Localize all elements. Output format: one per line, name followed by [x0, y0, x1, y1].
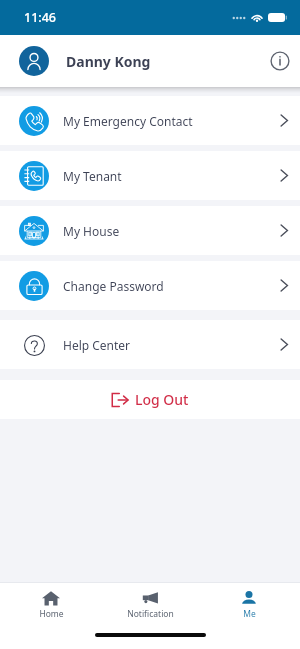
staticText: Help Center [63, 337, 131, 353]
button[interactable]: Danny Kong [0, 35, 300, 87]
button[interactable]: My House [0, 206, 300, 255]
staticText: My Emergency Contact [63, 113, 193, 129]
staticText: 11:46 [24, 9, 57, 26]
staticText: Home [39, 608, 64, 620]
button[interactable]: My Tenant [0, 151, 300, 200]
staticText: My Tenant [63, 168, 122, 184]
button[interactable]: Home [3, 583, 99, 620]
button[interactable]: Log Out [0, 380, 300, 419]
button[interactable]: Change Password [0, 261, 300, 310]
staticText: Notification [127, 608, 174, 620]
staticText: Change Password [63, 278, 164, 294]
staticText: My House [63, 223, 120, 239]
button[interactable]: Information [267, 48, 293, 74]
staticText: Log Out [135, 390, 189, 409]
button[interactable]: Help Center [0, 320, 300, 369]
button[interactable]: My Emergency Contact [0, 96, 300, 145]
button[interactable]: Me [201, 583, 297, 620]
staticText: Danny Kong [66, 52, 151, 71]
button[interactable]: Notification [102, 583, 198, 620]
staticText: Me [243, 608, 256, 620]
